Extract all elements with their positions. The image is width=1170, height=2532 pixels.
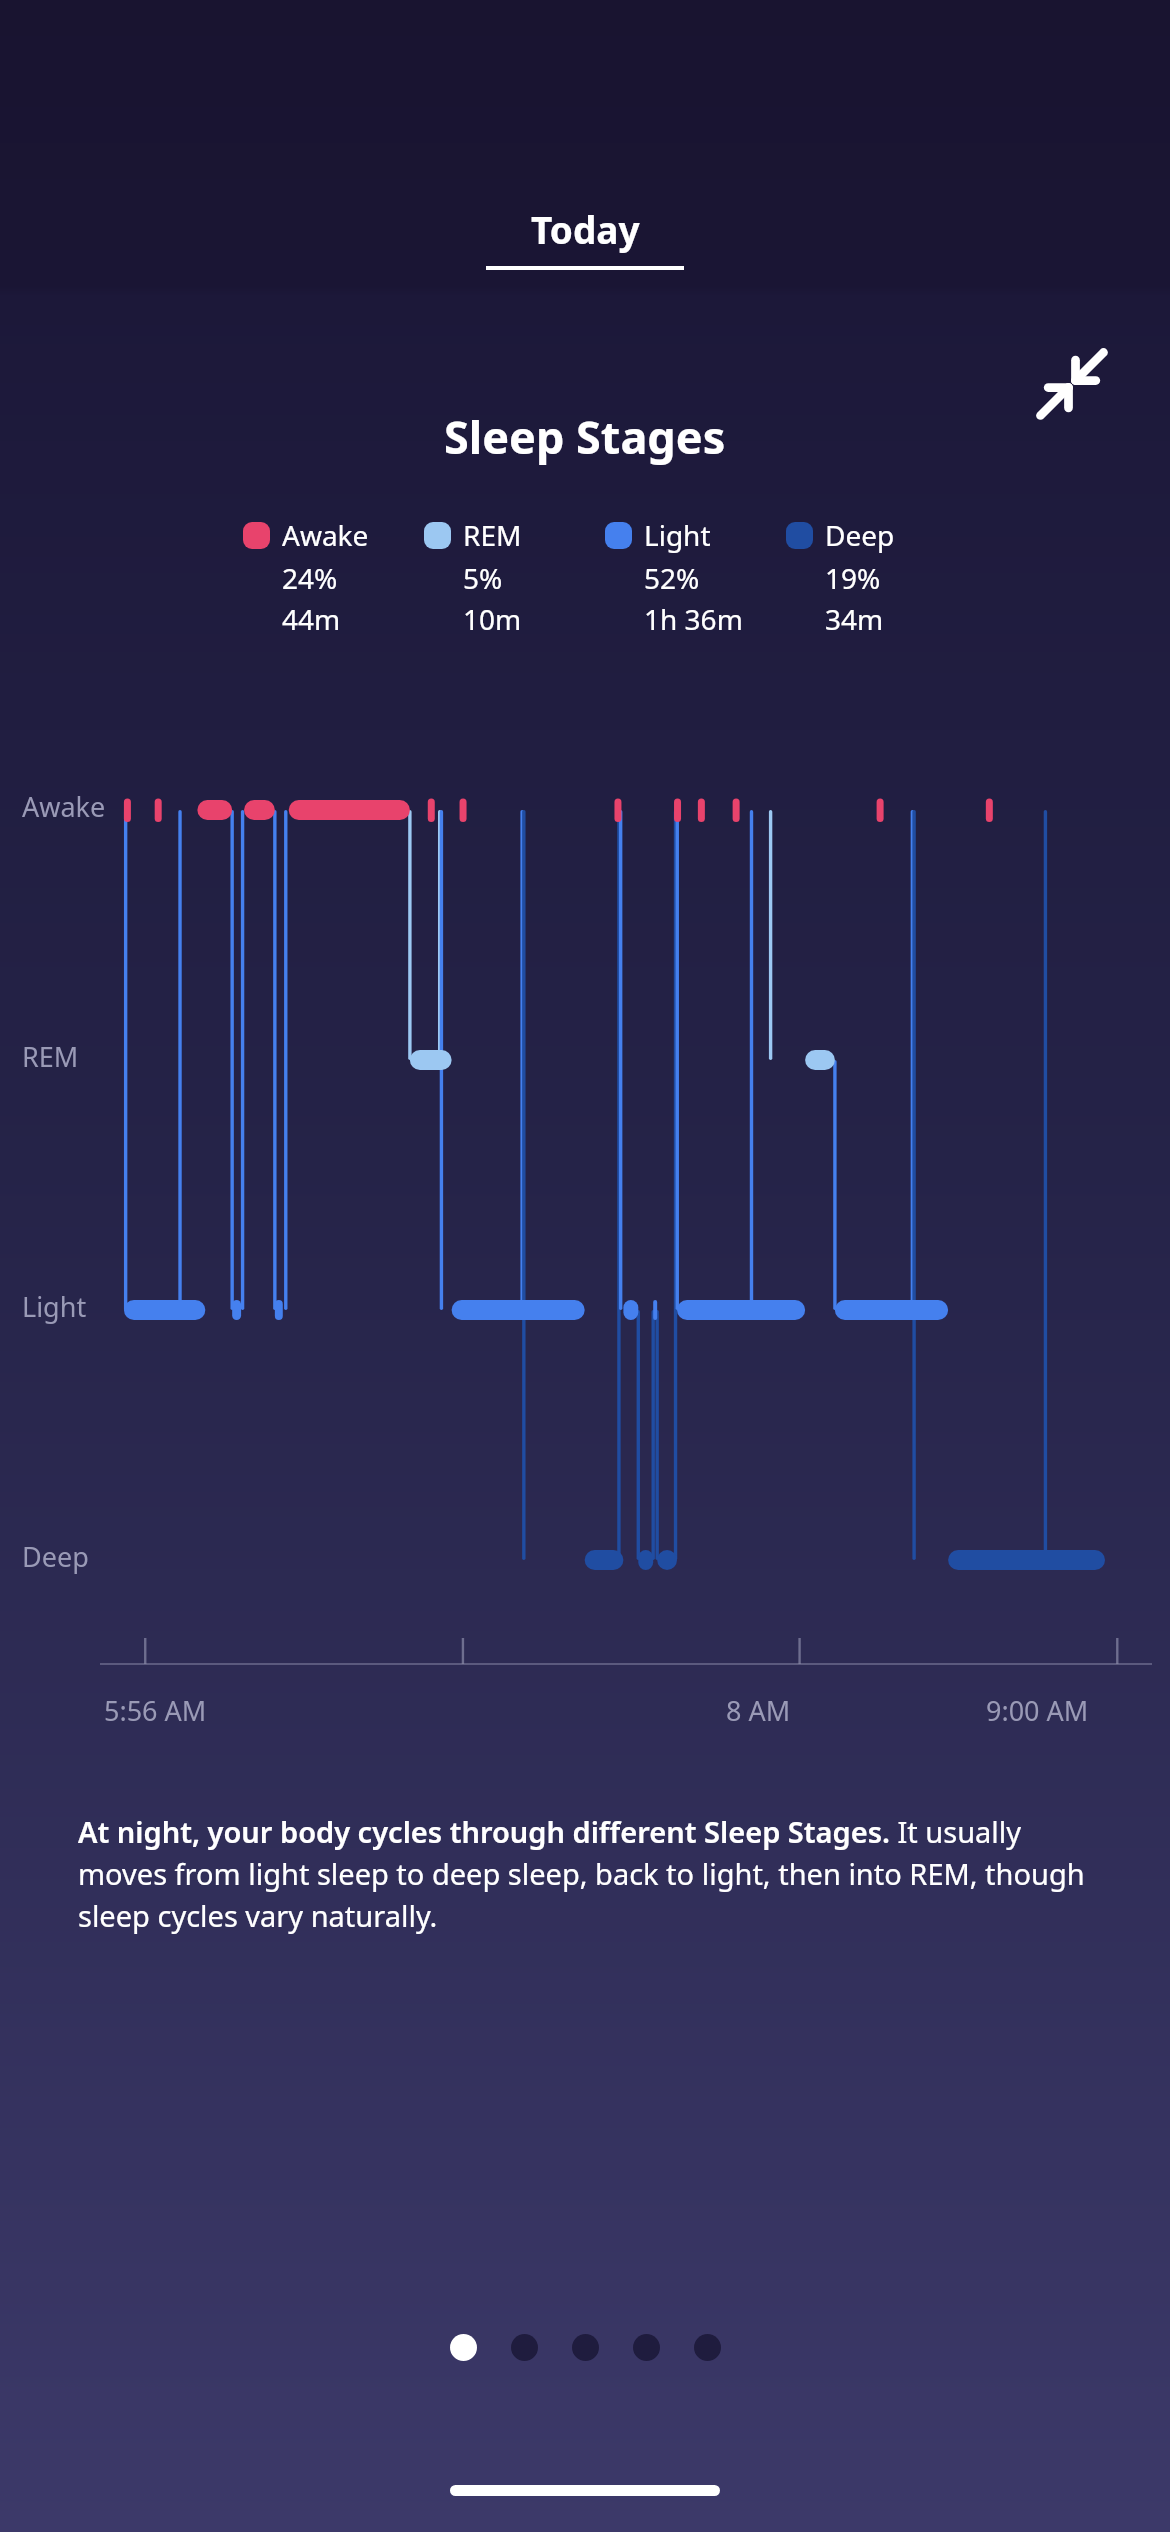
staticText: 9:00 AM <box>986 1692 1089 1729</box>
staticText: 24% <box>282 559 338 597</box>
staticText: Awake <box>282 516 369 554</box>
staticText: 1h 36m <box>644 600 743 638</box>
button[interactable]: Sleep stages hypnogram <box>0 0 1170 2532</box>
staticText: At night, your body cycles through diffe… <box>78 1812 1100 1935</box>
button[interactable] <box>511 2334 538 2361</box>
staticText: 44m <box>282 600 341 638</box>
staticText: Awake <box>22 788 106 825</box>
staticText: Light <box>22 1288 87 1325</box>
staticText: 19% <box>825 559 881 597</box>
staticText: Sleep Stages <box>444 406 726 467</box>
button[interactable] <box>572 2334 599 2361</box>
staticText: Deep <box>825 516 895 554</box>
staticText: Today <box>531 204 640 254</box>
staticText: REM <box>463 516 522 554</box>
staticText: 10m <box>463 600 522 638</box>
button[interactable]: Collapse <box>1014 326 1130 442</box>
button[interactable] <box>694 2334 721 2361</box>
staticText: 34m <box>825 600 884 638</box>
staticText: 52% <box>644 559 700 597</box>
staticText: REM <box>22 1038 79 1075</box>
staticText: Light <box>644 516 711 554</box>
staticText: 8 AM <box>726 1692 791 1729</box>
button[interactable]: Today <box>486 204 684 270</box>
staticText: 5% <box>463 559 503 597</box>
staticText: Deep <box>22 1538 89 1575</box>
button[interactable] <box>450 2334 477 2361</box>
button[interactable] <box>633 2334 660 2361</box>
staticText: 5:56 AM <box>104 1692 207 1729</box>
